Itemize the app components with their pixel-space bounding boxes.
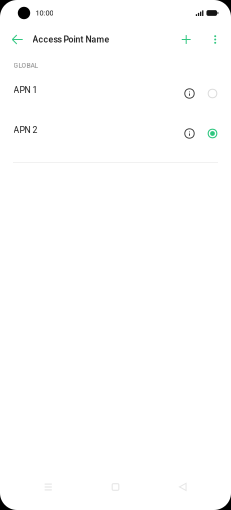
staticText: APN 1 [13, 85, 37, 95]
staticText: APN 2 [13, 125, 37, 135]
button[interactable]: APN details [178, 110, 201, 150]
button[interactable]: APN 2 [0, 110, 231, 150]
button[interactable]: Select [201, 70, 224, 110]
button[interactable]: APN details [178, 70, 201, 110]
staticText: Access Point Name [32, 34, 109, 45]
button[interactable]: Selected [201, 110, 224, 150]
button[interactable]: Back [164, 476, 202, 498]
staticText: GLOBAL [13, 61, 38, 69]
button[interactable]: APN 1 [0, 70, 231, 110]
button[interactable]: Recent apps [29, 476, 67, 498]
staticText: 10:00 [35, 9, 53, 17]
button[interactable]: More options [206, 27, 224, 51]
button[interactable]: Back [6, 27, 28, 51]
button[interactable]: Add APN [175, 27, 197, 51]
button[interactable]: Home [96, 476, 134, 498]
